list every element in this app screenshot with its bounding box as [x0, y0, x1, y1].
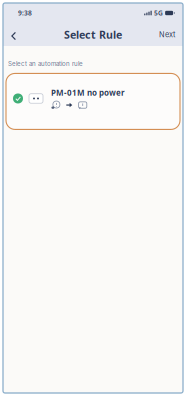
- button[interactable]: PM-01M no power: [6, 73, 180, 129]
- staticText: Next: [159, 30, 175, 39]
- button[interactable]: Next: [154, 25, 180, 44]
- staticText: 9:38: [18, 9, 32, 17]
- staticText: 5G: [154, 9, 163, 17]
- staticText: Select Rule: [64, 27, 122, 42]
- button[interactable]: Back: [6, 25, 21, 44]
- staticText: PM-01M no power: [51, 87, 125, 98]
- staticText: Select an automation rule: [8, 60, 83, 67]
